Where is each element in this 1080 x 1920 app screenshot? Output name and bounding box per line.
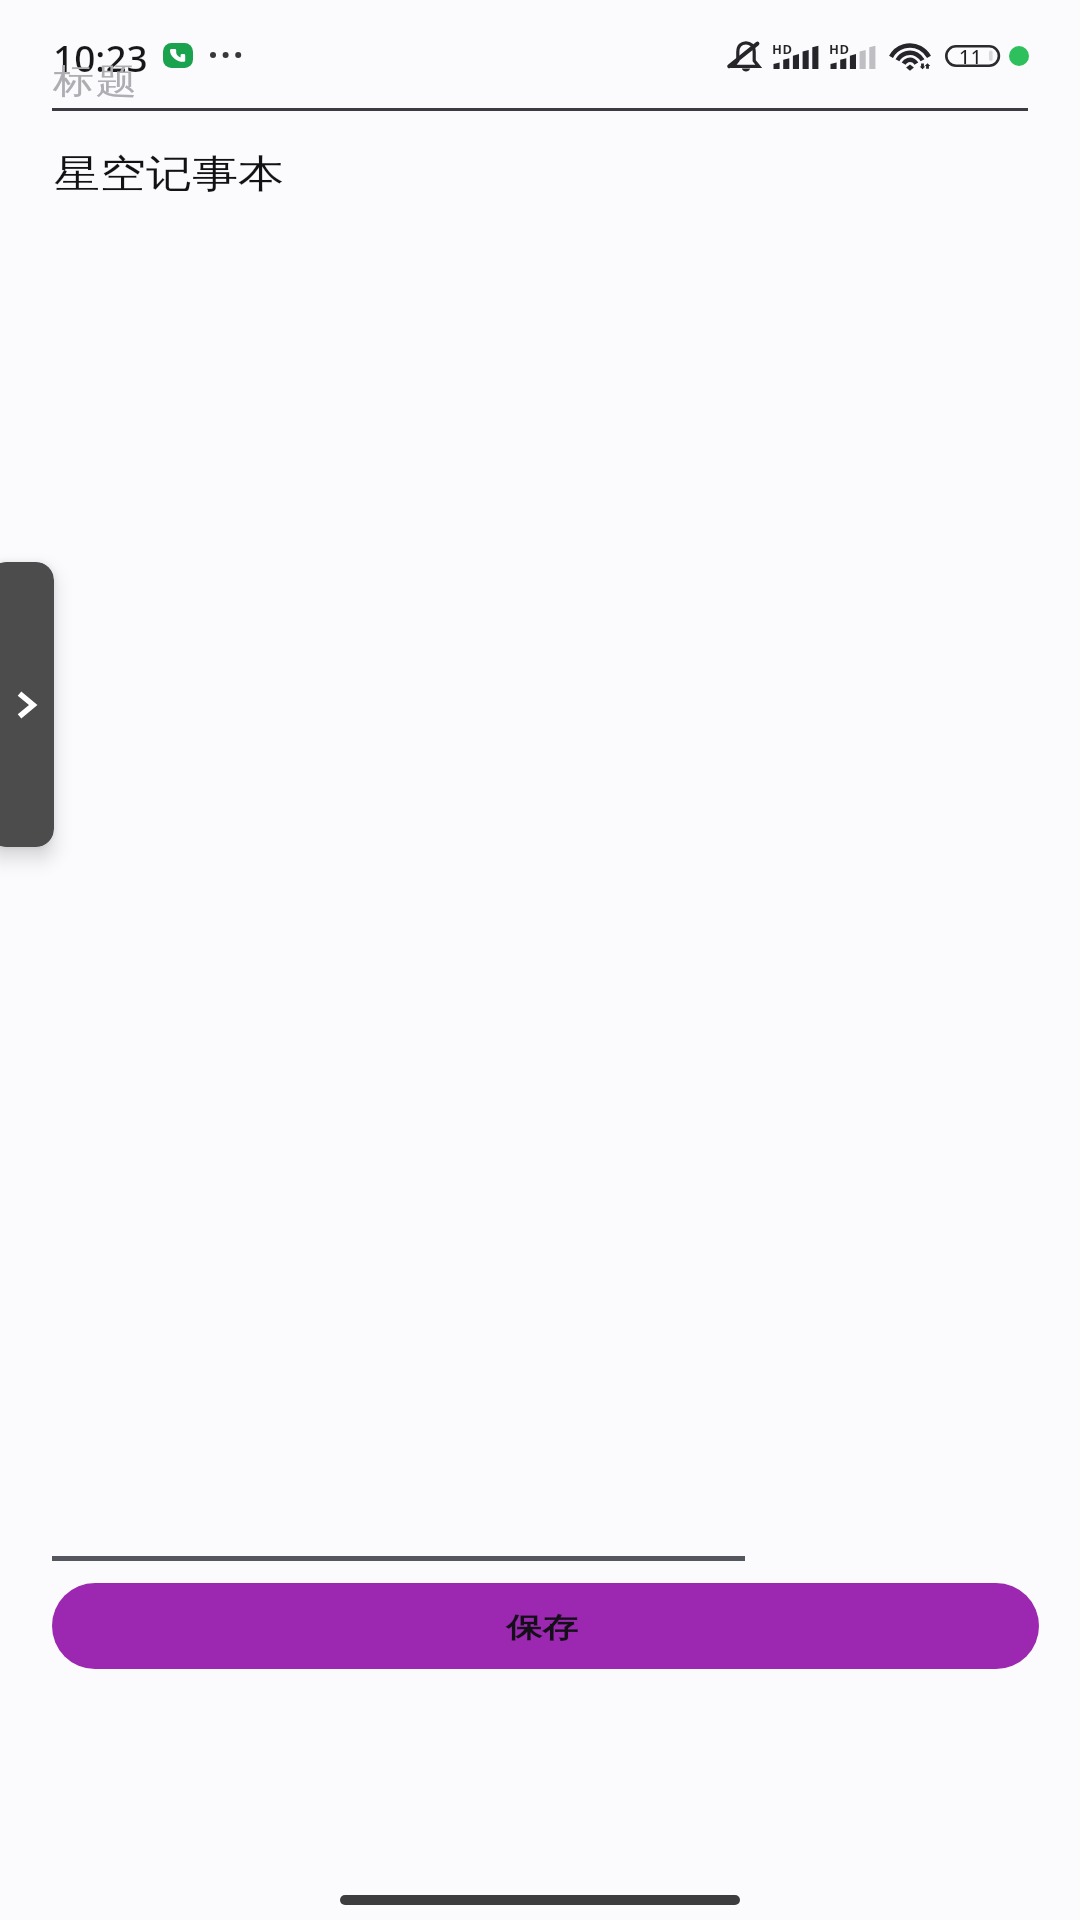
staticText: 10:23 xyxy=(53,32,148,82)
button[interactable]: Open drawer xyxy=(0,562,54,847)
staticText: 星空记事本 xyxy=(54,150,284,199)
button[interactable]: 标题 xyxy=(52,52,1030,110)
staticText: 保存 xyxy=(506,1610,578,1645)
staticText: HD xyxy=(772,40,793,58)
staticText: 11 xyxy=(959,44,983,70)
button[interactable]: 保存 xyxy=(52,1583,1039,1669)
staticText: 标题 xyxy=(52,60,138,104)
staticText: HD xyxy=(829,40,850,58)
